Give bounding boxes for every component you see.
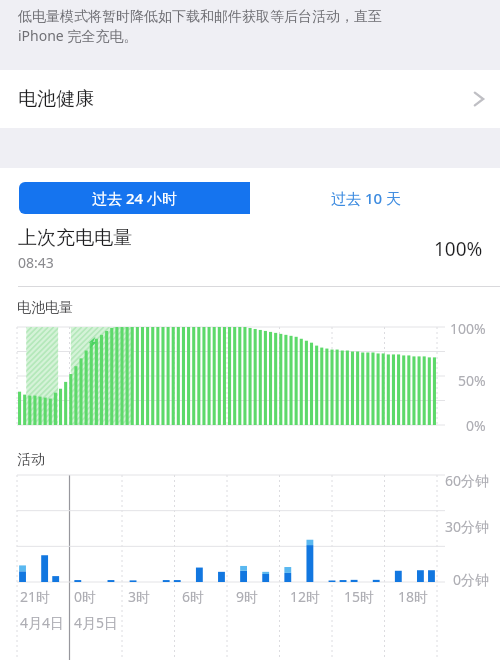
staticText: 4月5日	[74, 613, 119, 632]
staticText: 活动	[17, 451, 45, 469]
staticText: 30分钟	[445, 517, 490, 536]
staticText: 08:43	[18, 253, 54, 272]
staticText: 9时	[236, 587, 259, 606]
staticText: 过去 24 小时	[92, 188, 177, 208]
staticText: 电池健康	[18, 87, 94, 111]
staticText: 12时	[290, 587, 321, 606]
staticText: 电池电量	[17, 299, 73, 317]
staticText: 18时	[398, 587, 429, 606]
staticText: 15时	[344, 587, 375, 606]
other: Battery Health details	[473, 89, 485, 109]
staticText: 4月4日	[20, 613, 65, 632]
staticText: 100%	[450, 319, 486, 338]
staticText: 低电量模式将暂时降低如下载和邮件获取等后台活动，直至 iPhone 完全充电。	[18, 8, 382, 45]
button[interactable]: 电池健康	[0, 70, 500, 128]
staticText: 21时	[20, 587, 51, 606]
button[interactable]: 过去 24 小时	[19, 182, 250, 214]
button[interactable]: 过去 10 天	[250, 182, 481, 214]
staticText: 50%	[458, 371, 486, 390]
staticText: 0分钟	[453, 570, 490, 589]
staticText: 0%	[466, 416, 486, 435]
staticText: 上次充电电量	[18, 226, 132, 250]
staticText: 100%	[434, 236, 483, 262]
staticText: 6时	[182, 587, 205, 606]
staticText: 0时	[74, 587, 97, 606]
staticText: 60分钟	[445, 471, 490, 490]
staticText: 3时	[128, 587, 151, 606]
staticText: 过去 10 天	[331, 188, 401, 208]
